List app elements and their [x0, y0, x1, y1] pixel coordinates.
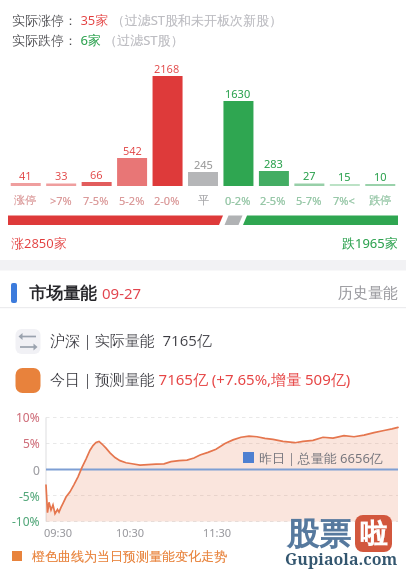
- staticText: 橙色曲线为当日预测量能变化走势: [32, 548, 227, 564]
- staticText: 33: [55, 168, 68, 183]
- button[interactable]: 历史量能: [0, 0, 80, 20]
- staticText: 跌停: [369, 193, 391, 207]
- staticText: 5-2%: [119, 193, 145, 208]
- button[interactable]: [0, 358, 406, 398]
- staticText: 啦: [360, 517, 387, 551]
- staticText: 历史量能: [338, 284, 398, 303]
- staticText: 27: [303, 168, 316, 183]
- staticText: -5%: [19, 488, 40, 504]
- staticText: >7%: [50, 193, 72, 208]
- staticText: -10%: [12, 513, 40, 529]
- staticText: 2-5%: [260, 193, 286, 208]
- staticText: 涨停: [14, 193, 36, 207]
- staticText: 0-2%: [225, 193, 251, 208]
- button[interactable]: [0, 318, 406, 358]
- staticText: 66: [90, 167, 103, 182]
- staticText: 股票: [287, 514, 351, 554]
- staticText: 0: [33, 462, 40, 478]
- staticText: 11:30: [203, 525, 232, 540]
- staticText: 09-27: [102, 283, 142, 303]
- staticText: 2-0%: [154, 193, 180, 208]
- staticText: 市场量能: [29, 283, 97, 303]
- staticText: 沪深｜实际量能 7165亿: [50, 330, 212, 350]
- staticText: 涨2850家: [11, 234, 67, 252]
- staticText: 10%: [16, 409, 40, 425]
- staticText: 10:30: [116, 525, 145, 540]
- staticText: 283: [264, 156, 283, 171]
- staticText: 平: [198, 193, 209, 207]
- staticText: 实际涨停： 35家 （过滤ST股和未开板次新股）: [12, 11, 282, 29]
- staticText: 今日｜预测量能 7165亿 (+7.65%,增量 509亿): [50, 369, 351, 389]
- staticText: 1630: [225, 86, 251, 101]
- staticText: 5-7%: [296, 193, 322, 208]
- staticText: 跌1965家: [342, 234, 398, 252]
- staticText: 7%<: [333, 193, 355, 208]
- staticText: 7-5%: [83, 193, 109, 208]
- staticText: 41: [19, 168, 32, 183]
- staticText: 实际跌停： 6家 （过滤ST股）: [12, 31, 184, 49]
- staticText: 5%: [23, 435, 40, 451]
- staticText: 10: [374, 169, 387, 184]
- staticText: 昨日｜总量能 6656亿: [259, 449, 383, 467]
- staticText: Gupiaola.com: [285, 548, 398, 570]
- staticText: 15: [338, 169, 351, 184]
- staticText: 09:30: [44, 525, 73, 540]
- staticText: 2168: [154, 61, 180, 76]
- staticText: 245: [194, 157, 213, 172]
- staticText: 542: [123, 143, 142, 158]
